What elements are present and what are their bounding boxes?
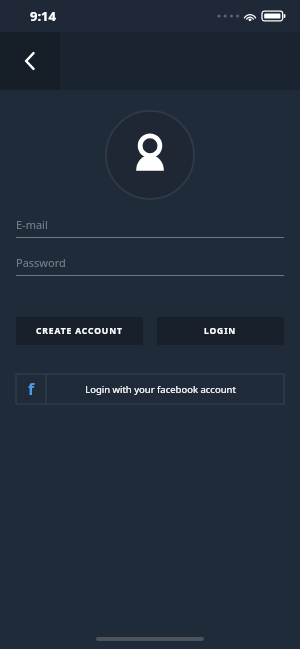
staticText: Password [16,255,66,270]
button[interactable]: Password [16,255,284,276]
button[interactable]: CREATE ACCOUNT [16,317,143,345]
staticText: E-mail [16,217,48,232]
staticText: Login with your facebook account [85,383,236,396]
staticText: f [28,378,35,400]
staticText: CREATE ACCOUNT [36,325,123,337]
staticText: 9:14 [30,7,56,25]
staticText: LOGIN [204,325,237,337]
button[interactable]: f [16,374,284,404]
button[interactable]: E-mail [16,217,284,238]
button[interactable]: LOGIN [157,317,284,345]
button[interactable]: Back [0,32,60,90]
